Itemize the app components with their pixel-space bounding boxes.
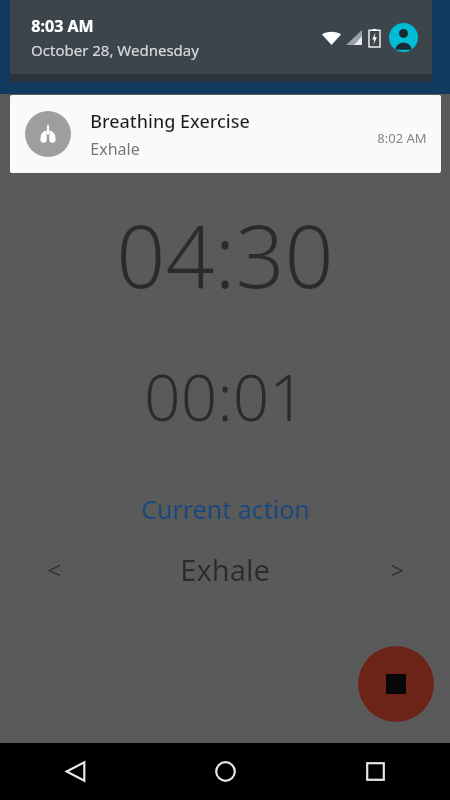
staticText: < (47, 553, 61, 586)
button[interactable]: Breathing Exercise (10, 95, 441, 173)
button[interactable]: Next action (343, 553, 450, 586)
staticText: Breathing Exercise (90, 109, 250, 134)
staticText: October 28, Wednesday (31, 40, 199, 60)
button[interactable]: Home (150, 743, 300, 800)
staticText: 8:03 AM (31, 15, 94, 37)
button[interactable]: Previous action (0, 553, 107, 586)
button[interactable]: User account (389, 23, 418, 52)
staticText: Current action (141, 492, 310, 526)
staticText: Exhale (90, 138, 140, 160)
staticText: Exhale (180, 550, 270, 589)
button[interactable]: Recent apps (300, 743, 450, 800)
button[interactable]: Current action (133, 488, 318, 530)
staticText: > (390, 553, 404, 586)
button[interactable]: Back (0, 743, 150, 800)
button[interactable]: Stop (358, 646, 434, 722)
staticText: 8:02 AM (377, 129, 427, 147)
staticText: 04:30 (116, 196, 334, 313)
staticText: 00:01 (144, 353, 306, 440)
